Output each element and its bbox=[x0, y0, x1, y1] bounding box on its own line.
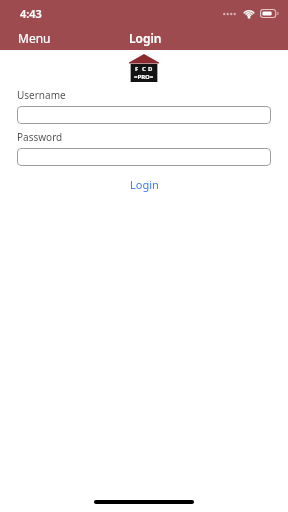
staticText: Menu bbox=[18, 30, 51, 46]
staticText: C bbox=[142, 65, 146, 73]
staticText: 4:43 bbox=[20, 6, 42, 21]
staticText: =PRO= bbox=[134, 73, 154, 81]
button[interactable] bbox=[17, 106, 271, 124]
staticText: Password bbox=[17, 130, 63, 144]
other: Wi-Fi bbox=[243, 9, 255, 18]
other: Cellular signal bbox=[223, 10, 238, 18]
staticText: Username bbox=[17, 88, 66, 102]
button[interactable]: Menu bbox=[0, 26, 63, 50]
staticText: Login bbox=[129, 30, 162, 46]
staticText: Login bbox=[130, 177, 159, 192]
other: Battery bbox=[260, 9, 279, 18]
staticText: D bbox=[148, 65, 153, 73]
button[interactable] bbox=[17, 148, 271, 166]
staticText: F bbox=[135, 65, 139, 73]
button[interactable]: Login bbox=[114, 174, 175, 195]
